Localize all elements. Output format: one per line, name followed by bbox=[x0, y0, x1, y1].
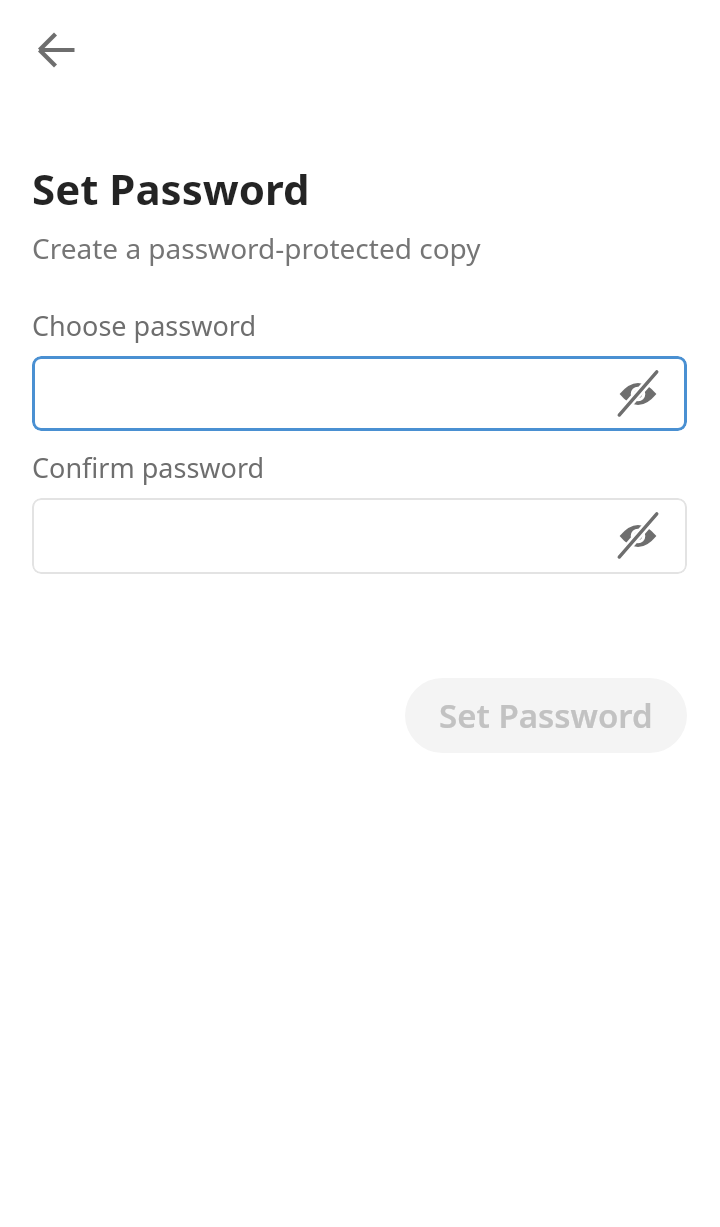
staticText: Confirm password bbox=[32, 449, 265, 486]
button[interactable]: Show password bbox=[616, 514, 660, 558]
button[interactable]: Show password bbox=[616, 372, 660, 416]
button[interactable]: Show password bbox=[32, 498, 687, 574]
staticText: Create a password-protected copy bbox=[32, 229, 481, 267]
staticText: Choose password bbox=[32, 307, 256, 344]
staticText: Set Password bbox=[439, 693, 653, 738]
button[interactable]: Show password bbox=[32, 356, 687, 431]
button[interactable]: Back bbox=[18, 11, 96, 89]
button[interactable]: Set Password bbox=[405, 678, 687, 753]
staticText: Set Password bbox=[32, 160, 310, 217]
